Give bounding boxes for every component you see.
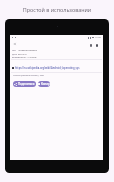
staticText: https://ru.wikipedia.org/wiki/Android_(o…	[15, 66, 80, 69]
staticText: Тип	[12, 49, 16, 52]
button[interactable]: Bookmark	[90, 44, 92, 47]
button[interactable]: Копир.	[38, 81, 50, 87]
staticText: Простой в использовании	[0, 6, 114, 13]
button[interactable]: Поделиться	[13, 81, 36, 87]
staticText: Дата	[12, 53, 17, 56]
staticText: 18:35:21 / 12:30:05	[18, 56, 37, 59]
staticText: Копир.	[41, 82, 50, 86]
staticText: Поделиться	[18, 82, 35, 86]
button[interactable]: Copy	[96, 44, 98, 47]
staticText: Время	[12, 56, 19, 59]
staticText: Интернет-ресурсы	[18, 49, 38, 52]
staticText: Android (operating system) - Wiki	[13, 74, 44, 77]
button[interactable]: https://ru.wikipedia.org/wiki/Android_(o…	[10, 65, 103, 70]
staticText: 08/10/21	[18, 53, 27, 56]
staticText: 12:30	[95, 36, 101, 39]
